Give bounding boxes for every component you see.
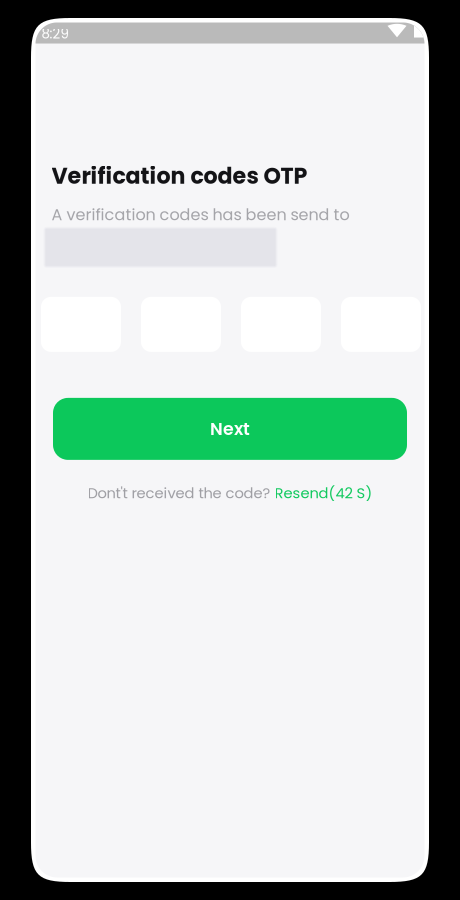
staticText: Verification codes OTP bbox=[51, 160, 307, 191]
staticText: Next bbox=[210, 417, 250, 441]
button[interactable]: Resend(42 S) bbox=[274, 483, 372, 503]
button[interactable]: Next bbox=[53, 398, 407, 460]
staticText: Resend(42 S) bbox=[274, 483, 372, 503]
staticText: 8:29 bbox=[41, 24, 68, 43]
staticText: A verification codes has been send to bbox=[51, 203, 349, 226]
staticText: Dont't received the code? bbox=[87, 483, 274, 503]
